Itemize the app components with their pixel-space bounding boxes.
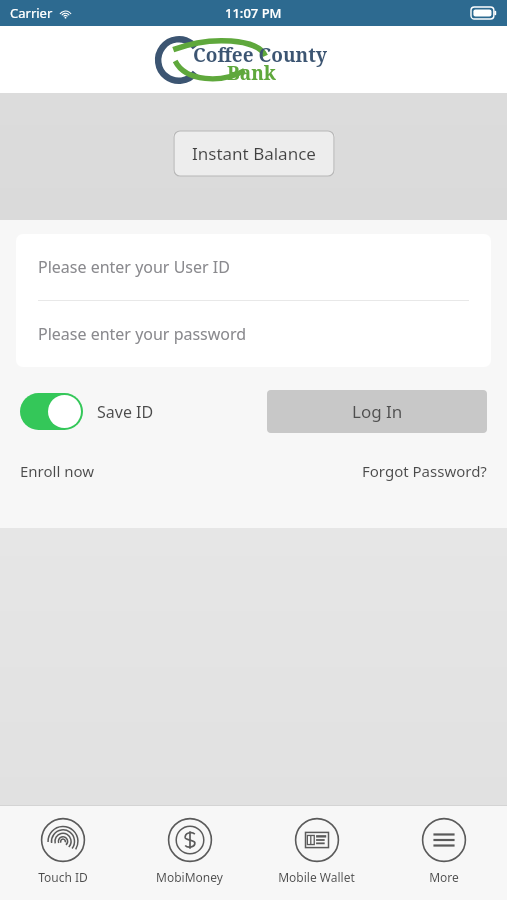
button[interactable]: Please enter your User ID	[16, 234, 491, 300]
button[interactable]: Log In	[267, 390, 487, 433]
button[interactable]: Mobile Wallet	[253, 806, 380, 900]
staticText: Bank	[227, 60, 276, 86]
button[interactable]: Instant Balance	[173, 131, 335, 176]
staticText: Forgot Password?	[362, 461, 487, 481]
staticText: Mobile Wallet	[278, 869, 355, 885]
button[interactable]: Forgot Password?	[362, 457, 487, 485]
staticText: Carrier	[10, 4, 53, 22]
button[interactable]: Please enter your password	[16, 301, 491, 367]
button[interactable]: Save ID	[20, 393, 154, 430]
staticText: Log In	[352, 400, 403, 423]
staticText: Touch ID	[38, 869, 88, 885]
button[interactable]: MobiMoney	[126, 806, 253, 900]
staticText: MobiMoney	[156, 869, 223, 885]
button[interactable]: Enroll now	[20, 457, 95, 485]
staticText: 11:07 PM	[225, 4, 282, 22]
staticText: Please enter your User ID	[38, 256, 230, 278]
staticText: Coffee County	[193, 42, 327, 68]
button[interactable]: More	[380, 806, 507, 900]
staticText: Instant Balance	[192, 142, 316, 165]
staticText: Enroll now	[20, 461, 95, 481]
staticText: More	[429, 869, 459, 885]
staticText: Please enter your password	[38, 323, 247, 345]
staticText: Save ID	[97, 401, 154, 423]
button[interactable]: Touch ID	[0, 806, 126, 900]
